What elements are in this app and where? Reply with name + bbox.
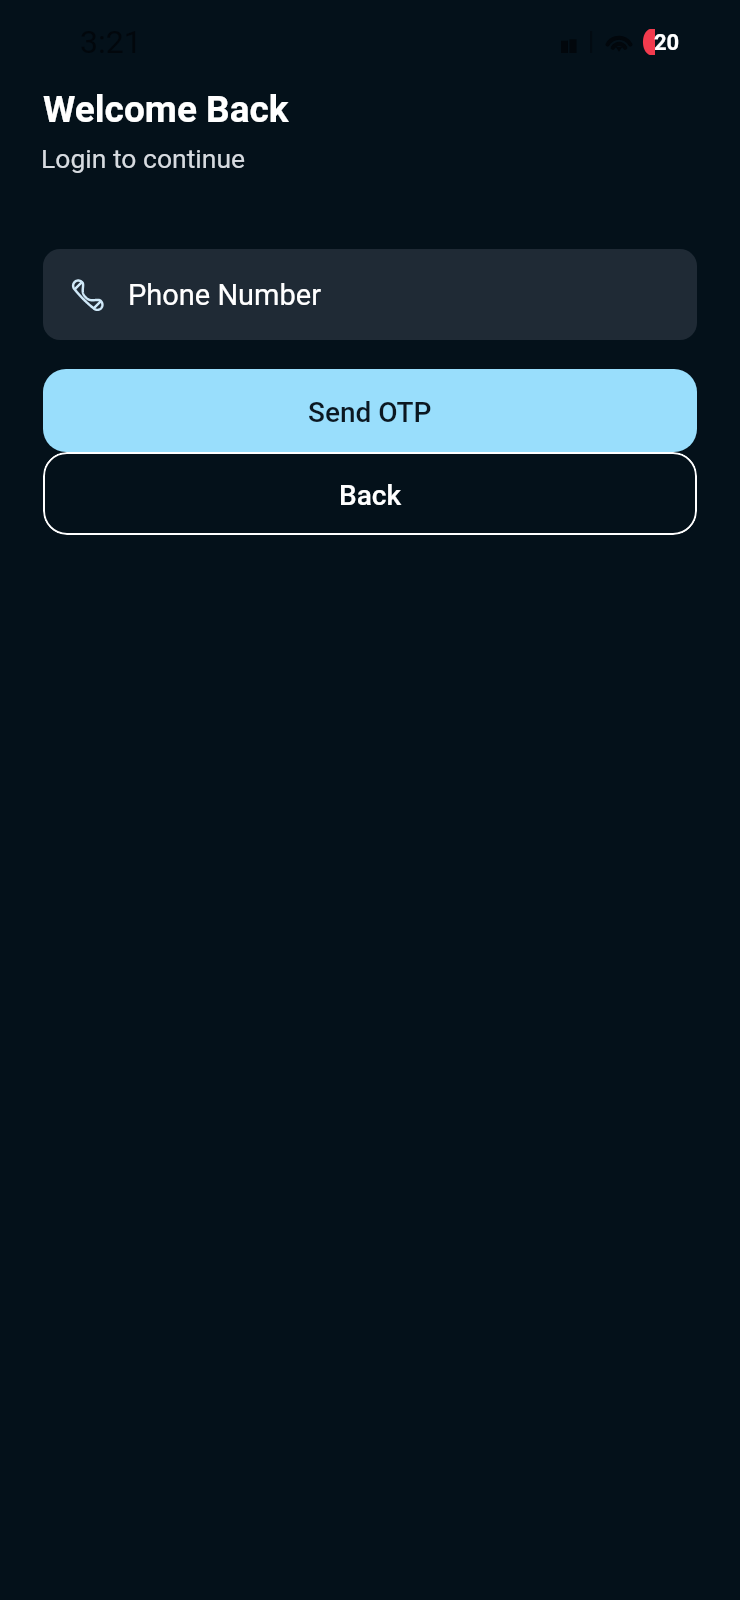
button[interactable]: Send OTP — [43, 369, 697, 452]
other: Wi-Fi — [604, 31, 634, 51]
staticText: Welcome Back — [43, 88, 289, 131]
staticText: Login to continue — [41, 143, 246, 174]
staticText: Phone Number — [128, 278, 321, 312]
staticText: 3:21 — [80, 23, 142, 61]
other: Battery 20 percent — [644, 29, 655, 55]
other: Mobile signal — [561, 31, 592, 53]
button[interactable]: Phone — [43, 249, 697, 340]
button[interactable]: Back — [43, 452, 697, 535]
staticText: Send OTP — [308, 396, 432, 429]
other: Phone — [68, 275, 108, 315]
staticText: 20 — [654, 30, 680, 56]
staticText: Back — [339, 479, 402, 512]
